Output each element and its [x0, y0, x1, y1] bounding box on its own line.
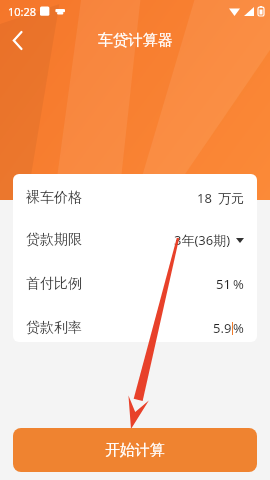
staticText: 5.9: [213, 319, 232, 337]
button[interactable]: 首付比例: [26, 272, 244, 296]
staticText: 贷款利率: [26, 319, 82, 337]
button[interactable]: 贷款期限: [26, 228, 244, 252]
button[interactable]: 开始计算: [13, 428, 257, 472]
staticText: %: [233, 275, 244, 293]
staticText: 首付比例: [26, 275, 82, 293]
staticText: 10:28: [8, 4, 37, 19]
staticText: %: [233, 319, 244, 337]
staticText: 万元: [218, 190, 244, 206]
staticText: 裸车价格: [26, 189, 82, 207]
staticText: 18: [197, 189, 212, 207]
button[interactable]: 贷款利率: [26, 316, 244, 340]
button[interactable]: 裸车价格: [26, 186, 244, 210]
staticText: 51: [216, 275, 231, 293]
staticText: 开始计算: [105, 441, 165, 460]
staticText: 3年(36期): [174, 231, 231, 249]
button[interactable]: Back: [0, 22, 36, 58]
staticText: 贷款期限: [26, 231, 82, 249]
staticText: 车贷计算器: [98, 31, 173, 50]
